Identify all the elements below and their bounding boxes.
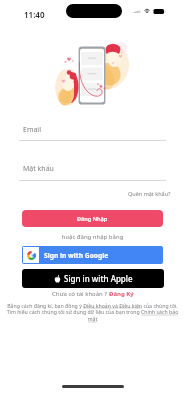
button[interactable]: Quên mật khẩu?	[127, 189, 172, 198]
button[interactable]: Sign in with Google	[22, 246, 163, 264]
staticText: Chưa có tài khoản ?	[52, 290, 109, 298]
staticText: Bằng cách đăng kí, bạn đồng ý Điều khoản…	[5, 302, 180, 323]
staticText: Quên mật khẩu?	[128, 190, 171, 197]
button[interactable]: Đăng Ký	[109, 290, 134, 298]
staticText: hoặc đăng nhập bằng	[0, 233, 185, 241]
button[interactable]: Email	[19, 125, 166, 141]
staticText: Email	[23, 125, 41, 135]
staticText: Sign in with Apple	[64, 273, 133, 284]
button[interactable]: Sign in with Apple	[22, 269, 164, 288]
staticText: Đăng Nhập	[77, 215, 108, 222]
button[interactable]: Đăng Nhập	[22, 210, 163, 227]
staticText: Mật khẩu	[23, 164, 54, 174]
staticText: 11:40	[24, 9, 45, 20]
staticText: Sign in with Google	[44, 251, 109, 260]
button[interactable]: Mật khẩu	[19, 164, 166, 181]
